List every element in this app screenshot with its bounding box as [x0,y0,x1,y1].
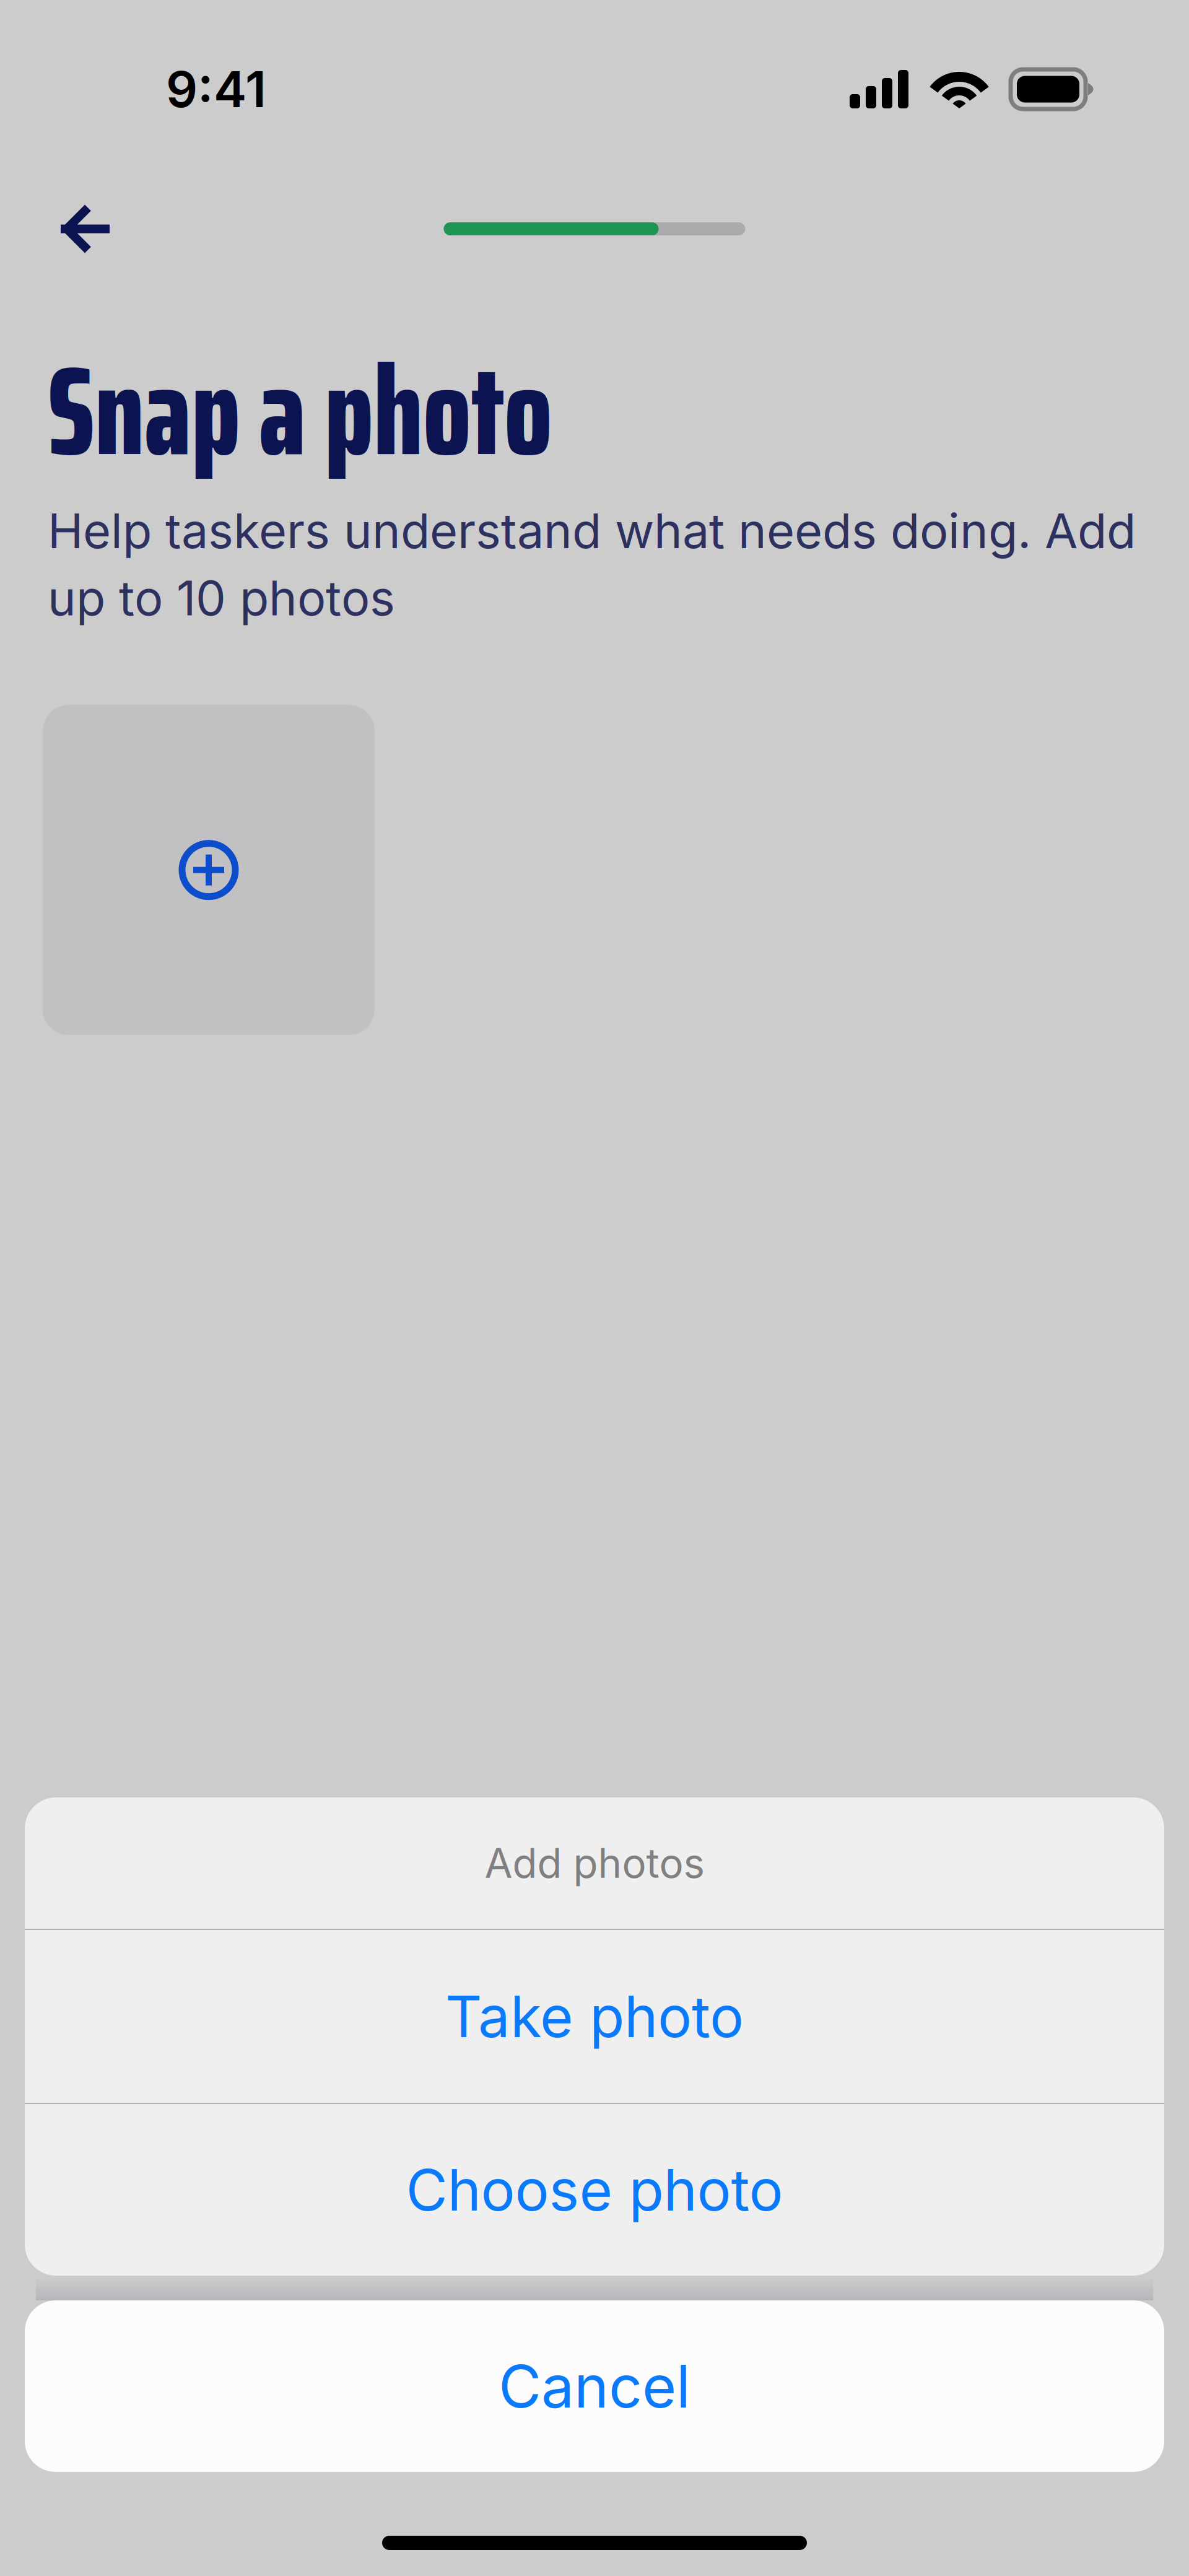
staticText: 9:41 [166,59,266,119]
staticText: Help taskers understand what needs doing… [48,502,1136,627]
button[interactable]: Add a photo [43,705,375,1035]
button[interactable]: Back [0,178,170,279]
staticText: Choose photo [406,2155,783,2224]
staticText: Take photo [445,1982,744,2051]
button[interactable]: Cancel [25,2300,1164,2472]
staticText: Snap a photo [48,313,552,508]
staticText: Cancel [499,2351,690,2422]
staticText: Add photos [485,1839,704,1888]
button[interactable]: Choose photo [25,2104,1164,2276]
button[interactable]: Take photo [25,1930,1164,2103]
